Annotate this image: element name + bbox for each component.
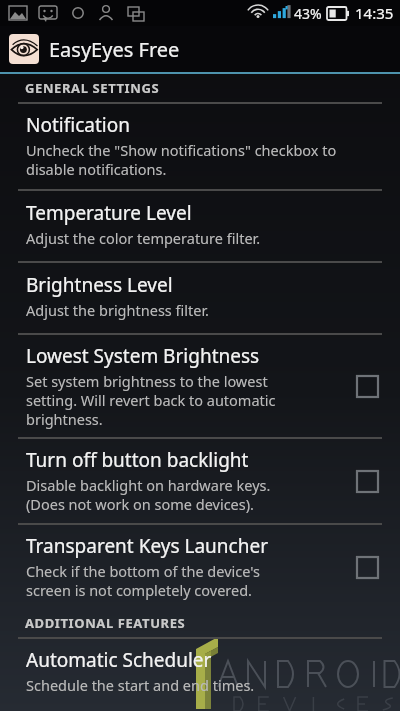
staticText: EasyEyes Free [49,36,180,63]
staticText: Check if the bottom of the device's scre… [26,561,261,600]
staticText: Lowest System Brightness [26,343,260,369]
button[interactable]: Lowest System Brightness [350,369,384,403]
staticText: Notification [26,112,130,138]
button[interactable]: Brightness Level [0,263,400,333]
staticText: Turn off button backlight [26,447,249,473]
button[interactable]: Temperature Level [0,191,400,261]
staticText: 43% [294,4,322,23]
staticText: Disable backlight on hardware keys. (Doe… [26,475,271,514]
staticText: ADDITIONAL FEATURES [25,614,186,632]
button[interactable]: Turn off button backlight [350,464,384,498]
staticText: Uncheck the "Show notifications" checkbo… [26,140,337,179]
staticText: Adjust the color temperature filter. [26,228,261,248]
staticText: Temperature Level [26,200,192,226]
button[interactable]: Lowest System Brightness [0,335,400,437]
staticText: GENERAL SETTINGS [25,79,160,97]
button[interactable]: Notification [0,104,400,189]
button[interactable]: EasyEyes Free [0,26,400,72]
staticText: Brightness Level [26,272,173,298]
staticText: Schedule the start and end times. [26,675,255,695]
button[interactable]: Transparent Keys Launcher [0,525,400,609]
button[interactable]: Transparent Keys Launcher [350,550,384,584]
staticText: Adjust the brightness filter. [26,300,209,320]
button[interactable]: Turn off button backlight [0,439,400,523]
staticText: Transparent Keys Launcher [26,533,269,559]
staticText: 14:35 [355,3,394,23]
staticText: Automatic Scheduler [26,647,212,673]
staticText: Set system brightness to the lowest sett… [26,371,276,429]
button[interactable]: Automatic Scheduler [0,639,400,703]
